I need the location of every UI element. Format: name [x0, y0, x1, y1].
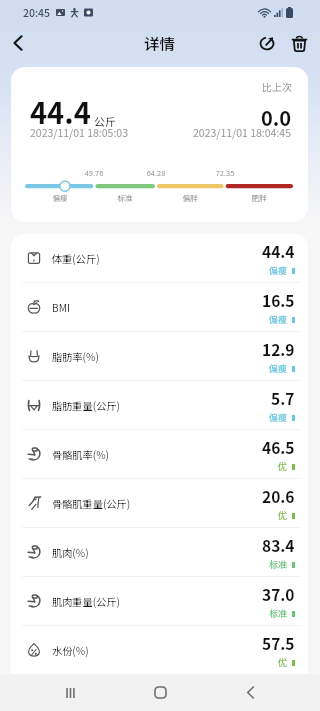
- staticText: 72.35: [205, 167, 245, 178]
- button[interactable]: 肌肉(%): [11, 528, 308, 576]
- staticText: 偏胖: [170, 192, 210, 203]
- staticText: 肥胖: [239, 192, 279, 203]
- button[interactable]: 水份(%): [11, 626, 308, 674]
- staticText: 优: [278, 656, 288, 669]
- staticText: 偏瘦: [40, 192, 80, 203]
- staticText: 肌肉(%): [52, 545, 89, 560]
- staticText: 体重(公斤): [52, 251, 100, 266]
- staticText: 标准: [105, 192, 145, 203]
- staticText: 偏瘦: [269, 411, 288, 424]
- staticText: BMI: [52, 300, 70, 315]
- staticText: 详情: [144, 32, 176, 54]
- button[interactable]: 骨骼肌重量(公斤): [11, 479, 308, 527]
- staticText: 83.4: [262, 534, 295, 556]
- staticText: 骨骼肌率(%): [52, 447, 110, 462]
- staticText: 肌肉重量(公斤): [52, 594, 121, 609]
- staticText: 20.6: [262, 485, 295, 507]
- button[interactable]: Home: [140, 674, 180, 711]
- button[interactable]: 脂肪率(%): [11, 332, 308, 380]
- staticText: 公斤: [94, 113, 116, 129]
- staticText: 12.9: [262, 338, 295, 360]
- button[interactable]: Back: [2, 27, 34, 59]
- button[interactable]: Back: [230, 674, 270, 711]
- staticText: 37.0: [262, 583, 295, 605]
- staticText: 44.4: [30, 90, 91, 132]
- button[interactable]: 体重(公斤): [11, 234, 308, 282]
- staticText: 0.0: [261, 103, 292, 132]
- staticText: 57.5: [262, 632, 295, 654]
- staticText: 64.28: [136, 167, 176, 178]
- staticText: 水份(%): [52, 643, 89, 658]
- staticText: 骨骼肌重量(公斤): [52, 496, 131, 511]
- staticText: 46.5: [262, 436, 295, 458]
- staticText: 优: [278, 509, 288, 522]
- staticText: 偏瘦: [269, 313, 288, 326]
- button[interactable]: Recent apps: [50, 674, 90, 711]
- button[interactable]: 骨骼肌率(%): [11, 430, 308, 478]
- staticText: 比上次: [262, 79, 292, 93]
- staticText: 标准: [269, 607, 288, 620]
- staticText: 44.4: [262, 240, 295, 262]
- staticText: 16.5: [262, 289, 295, 311]
- staticText: 优: [278, 460, 288, 473]
- staticText: 5.7: [271, 387, 295, 409]
- staticText: 脂肪重量(公斤): [52, 398, 121, 413]
- staticText: 脂肪率(%): [52, 349, 99, 364]
- staticText: 20:45: [23, 5, 51, 20]
- button[interactable]: BMI: [11, 283, 308, 331]
- staticText: 标准: [269, 558, 288, 571]
- button[interactable]: Share: [252, 28, 282, 58]
- button[interactable]: Delete: [284, 28, 314, 58]
- staticText: 2023/11/01 18:05:03: [30, 125, 129, 140]
- button[interactable]: 脂肪重量(公斤): [11, 381, 308, 429]
- staticText: 49.76: [74, 167, 114, 178]
- staticText: 偏瘦: [269, 362, 288, 375]
- staticText: 偏瘦: [269, 264, 288, 277]
- staticText: 2023/11/01 18:04:45: [193, 125, 292, 140]
- button[interactable]: 肌肉重量(公斤): [11, 577, 308, 625]
